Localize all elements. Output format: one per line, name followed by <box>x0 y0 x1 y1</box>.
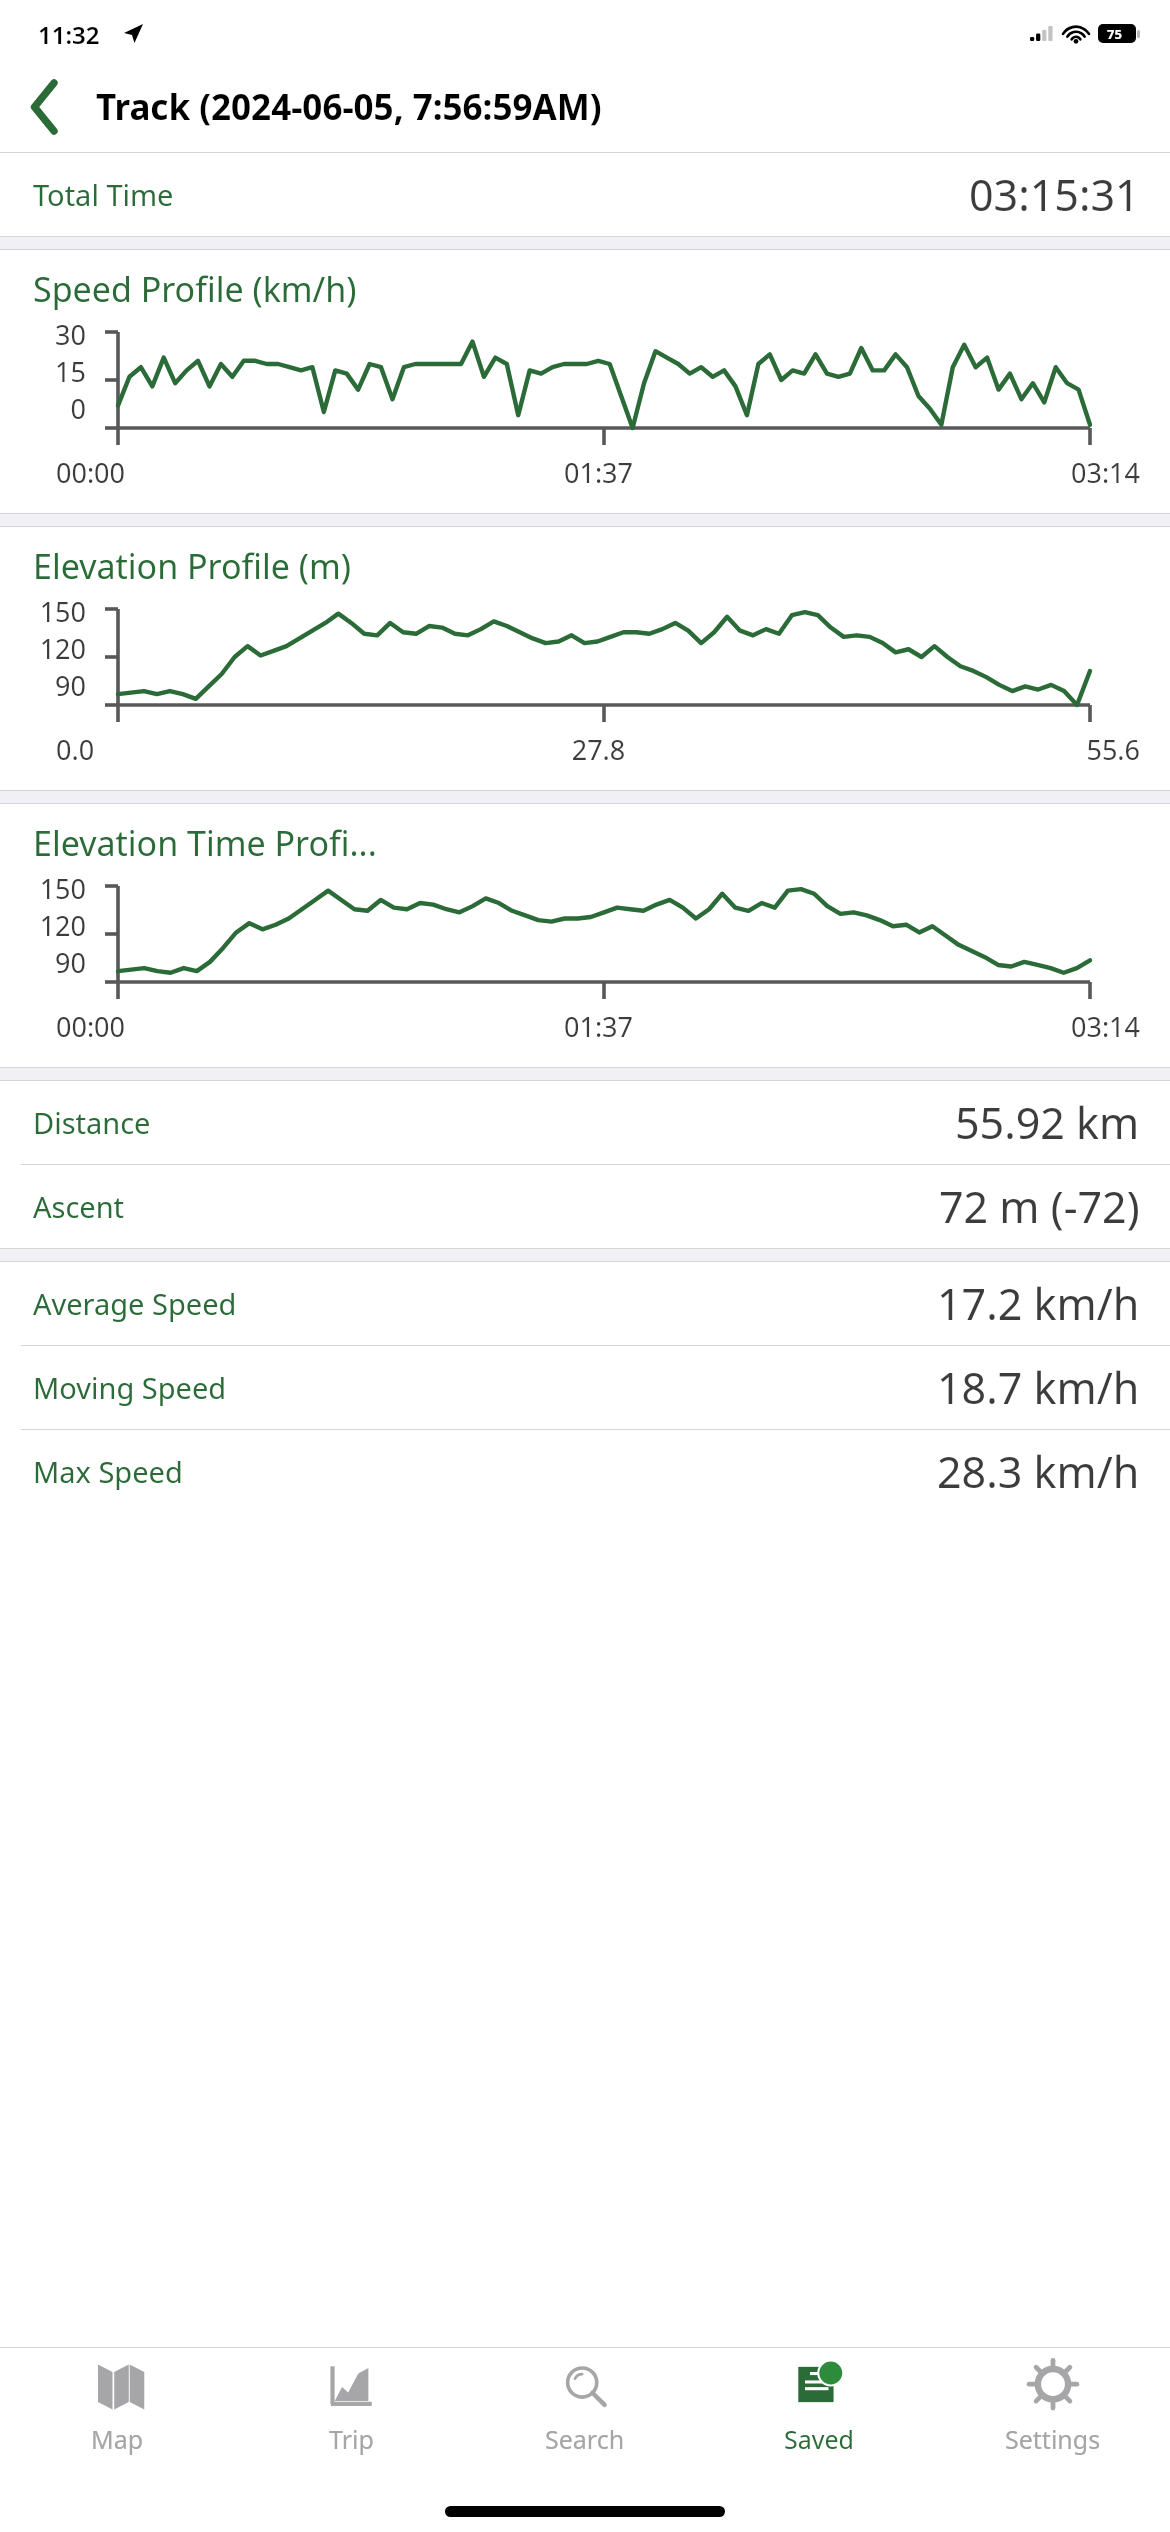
staticText: Max Speed <box>33 1452 183 1491</box>
staticText: 00:00 <box>56 1008 418 1045</box>
staticText: 0 <box>22 390 86 420</box>
staticText: Map <box>91 2422 144 2456</box>
staticText: 27.8 <box>418 731 779 768</box>
staticText: Saved <box>784 2422 854 2456</box>
staticText: 120 <box>22 907 86 944</box>
staticText: Speed Profile (km/h) <box>33 266 357 312</box>
staticText: Moving Speed <box>33 1368 227 1407</box>
staticText: 00:00 <box>56 454 418 491</box>
staticText: 55.6 <box>779 731 1140 768</box>
staticText: Settings <box>1005 2422 1101 2456</box>
staticText: 150 <box>22 593 86 630</box>
staticText: 17.2 km/h <box>937 1274 1140 1333</box>
staticText: 30 <box>22 316 86 353</box>
staticText: Distance <box>33 1103 151 1142</box>
staticText: 03:14 <box>779 1008 1140 1045</box>
button[interactable]: Saved <box>702 2348 936 2466</box>
staticText: 90 <box>22 944 86 974</box>
staticText: 01:37 <box>418 1008 779 1045</box>
staticText: Search <box>545 2422 625 2456</box>
staticText: 03:14 <box>779 454 1140 491</box>
button[interactable]: Back <box>0 62 88 152</box>
button[interactable]: Map <box>0 2348 234 2466</box>
staticText: 120 <box>22 630 86 667</box>
staticText: Average Speed <box>33 1284 237 1323</box>
staticText: Ascent <box>33 1187 125 1226</box>
staticText: 01:37 <box>418 454 779 491</box>
staticText: 11:32 <box>38 18 100 51</box>
staticText: 150 <box>22 870 86 907</box>
button[interactable]: Moving Speed <box>0 1346 1170 1429</box>
button[interactable]: Average Speed <box>0 1262 1170 1345</box>
staticText: 03:15:31 <box>969 165 1140 224</box>
staticText: 55.92 km <box>955 1093 1140 1152</box>
staticText: Elevation Profile (m) <box>33 543 351 589</box>
staticText: 90 <box>22 667 86 697</box>
staticText: 18.7 km/h <box>937 1358 1140 1417</box>
staticText: Trip <box>329 2422 374 2456</box>
staticText: Track (2024-06-05, 7:56:59AM) <box>96 83 602 131</box>
button[interactable]: Ascent <box>0 1165 1170 1248</box>
staticText: Elevation Time Profi... <box>33 820 377 866</box>
staticText: 28.3 km/h <box>937 1442 1140 1501</box>
staticText: 72 m (-72) <box>939 1177 1140 1236</box>
button[interactable]: Search <box>468 2348 702 2466</box>
button[interactable]: Trip <box>234 2348 468 2466</box>
staticText: 75 <box>1107 25 1122 43</box>
button[interactable]: Settings <box>936 2348 1170 2466</box>
button[interactable]: Max Speed <box>0 1430 1170 1513</box>
staticText: Total Time <box>33 175 174 214</box>
staticText: 15 <box>22 353 86 390</box>
button[interactable]: Total Time <box>0 153 1170 236</box>
staticText: 0.0 <box>56 731 418 768</box>
button[interactable]: Distance <box>0 1081 1170 1164</box>
